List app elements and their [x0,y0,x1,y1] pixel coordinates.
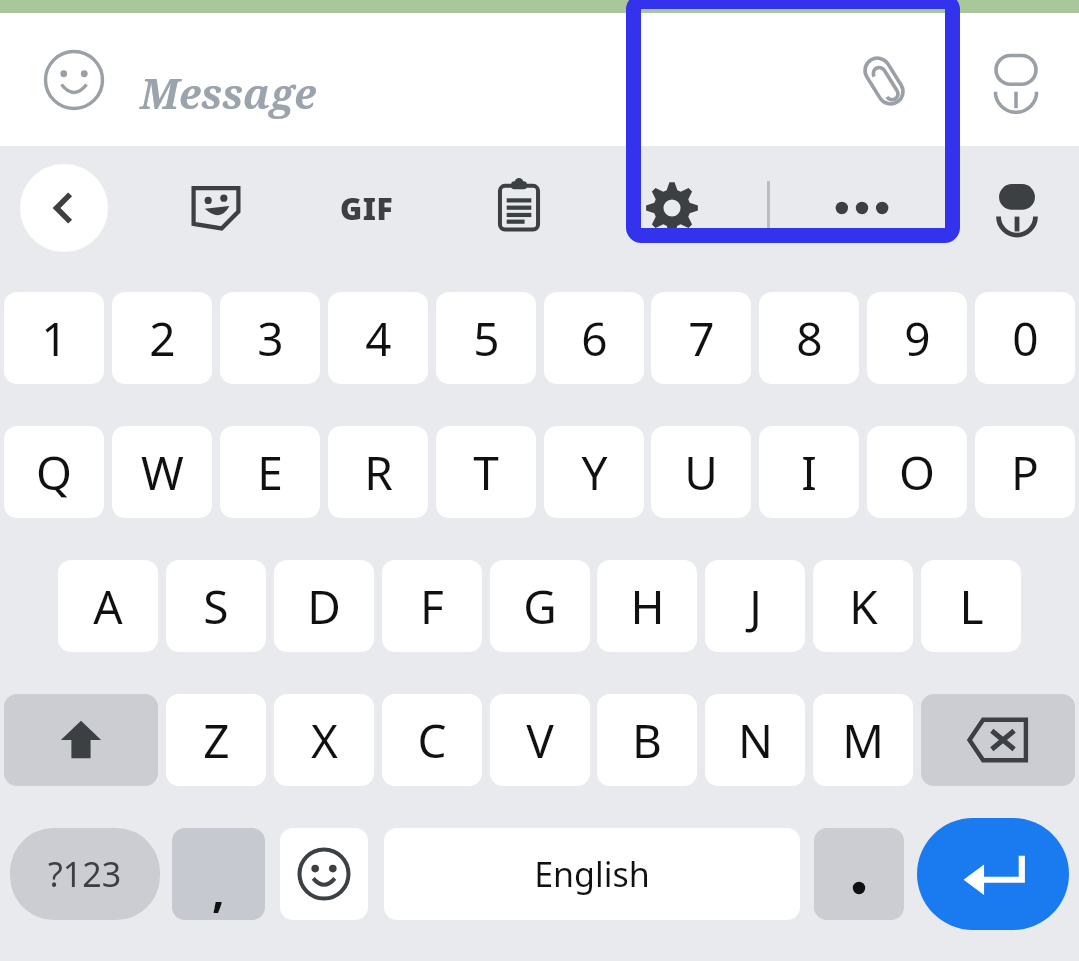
staticText: 8 [796,307,823,370]
button[interactable]: 2 [112,292,212,384]
button[interactable]: I [759,426,859,518]
staticText: Message [140,65,317,121]
staticText: X [311,709,338,772]
button[interactable]: Emoji [30,49,118,111]
button[interactable]: D [274,560,374,652]
staticText: J [749,575,762,638]
staticText: Y [581,441,608,504]
staticText: H [630,575,665,638]
button[interactable]: Settings [636,172,708,244]
staticText: 2 [149,307,176,370]
staticText: I [801,441,817,504]
button[interactable]: Attach [838,50,930,112]
button[interactable]: B [597,694,697,786]
button[interactable]: ?123 [10,828,160,920]
staticText: L [959,575,984,638]
button[interactable]: 3 [220,292,320,384]
staticText: R [364,441,393,504]
button[interactable]: Backspace [921,694,1075,786]
staticText: 7 [688,307,715,370]
button[interactable]: N [705,694,805,786]
button[interactable]: C [382,694,482,786]
staticText: G [523,575,557,638]
button[interactable]: U [651,426,751,518]
button[interactable]: X [274,694,374,786]
staticText: A [93,575,123,638]
staticText: English [534,851,650,897]
staticText: F [420,575,444,638]
button[interactable]: Y [544,426,644,518]
button[interactable]: V [490,694,590,786]
staticText: N [738,709,773,772]
button[interactable]: J [705,560,805,652]
staticText: ?123 [48,851,122,897]
button[interactable]: 0 [975,292,1075,384]
button[interactable]: More options [826,172,898,244]
staticText: , [212,860,225,920]
button[interactable]: Stickers [180,170,252,242]
staticText: GIF [340,188,394,229]
staticText: C [417,709,447,772]
staticText: W [141,441,184,504]
button[interactable]: K [813,560,913,652]
staticText: 0 [1012,307,1039,370]
staticText: U [684,441,718,504]
button[interactable]: 5 [436,292,536,384]
staticText: T [473,441,499,504]
button[interactable]: Voice typing [980,170,1054,244]
staticText: 1 [41,307,68,370]
staticText: O [899,441,935,504]
button[interactable]: W [112,426,212,518]
staticText: 6 [581,307,608,370]
button[interactable]: O [867,426,967,518]
button[interactable]: Q [4,426,104,518]
staticText: Z [203,709,230,772]
staticText: V [526,709,554,772]
button[interactable]: R [328,426,428,518]
button[interactable]: 7 [651,292,751,384]
button[interactable]: 1 [4,292,104,384]
staticText: D [307,575,341,638]
staticText: 9 [904,307,931,370]
button[interactable]: , [172,828,265,920]
button[interactable]: M [813,694,913,786]
staticText: P [1011,441,1039,504]
button[interactable]: 9 [867,292,967,384]
button[interactable]: 6 [544,292,644,384]
button[interactable]: L [921,560,1021,652]
staticText: K [849,575,878,638]
button[interactable] [814,828,904,920]
staticText: E [257,441,283,504]
button[interactable]: P [975,426,1075,518]
button[interactable]: 4 [328,292,428,384]
button[interactable]: Voice input [976,49,1056,113]
button[interactable]: Clipboard [483,170,555,242]
staticText: 5 [473,307,500,370]
staticText: S [203,575,229,638]
button[interactable]: A [58,560,158,652]
button[interactable]: F [382,560,482,652]
button[interactable]: E [220,426,320,518]
button[interactable]: 8 [759,292,859,384]
button[interactable]: English [384,828,800,920]
button[interactable]: Z [166,694,266,786]
button[interactable]: T [436,426,536,518]
button[interactable]: S [166,560,266,652]
staticText: Q [36,441,72,504]
staticText: 3 [257,307,284,370]
button[interactable]: GIF [330,172,404,244]
staticText: M [842,709,884,772]
button[interactable]: Shift [4,694,158,786]
button[interactable]: Back [20,164,108,252]
staticText: 4 [365,307,392,370]
button[interactable]: G [490,560,590,652]
button[interactable]: Emoji [280,828,368,920]
staticText: B [632,709,662,772]
button[interactable]: Enter [917,818,1069,930]
button[interactable]: H [597,560,697,652]
